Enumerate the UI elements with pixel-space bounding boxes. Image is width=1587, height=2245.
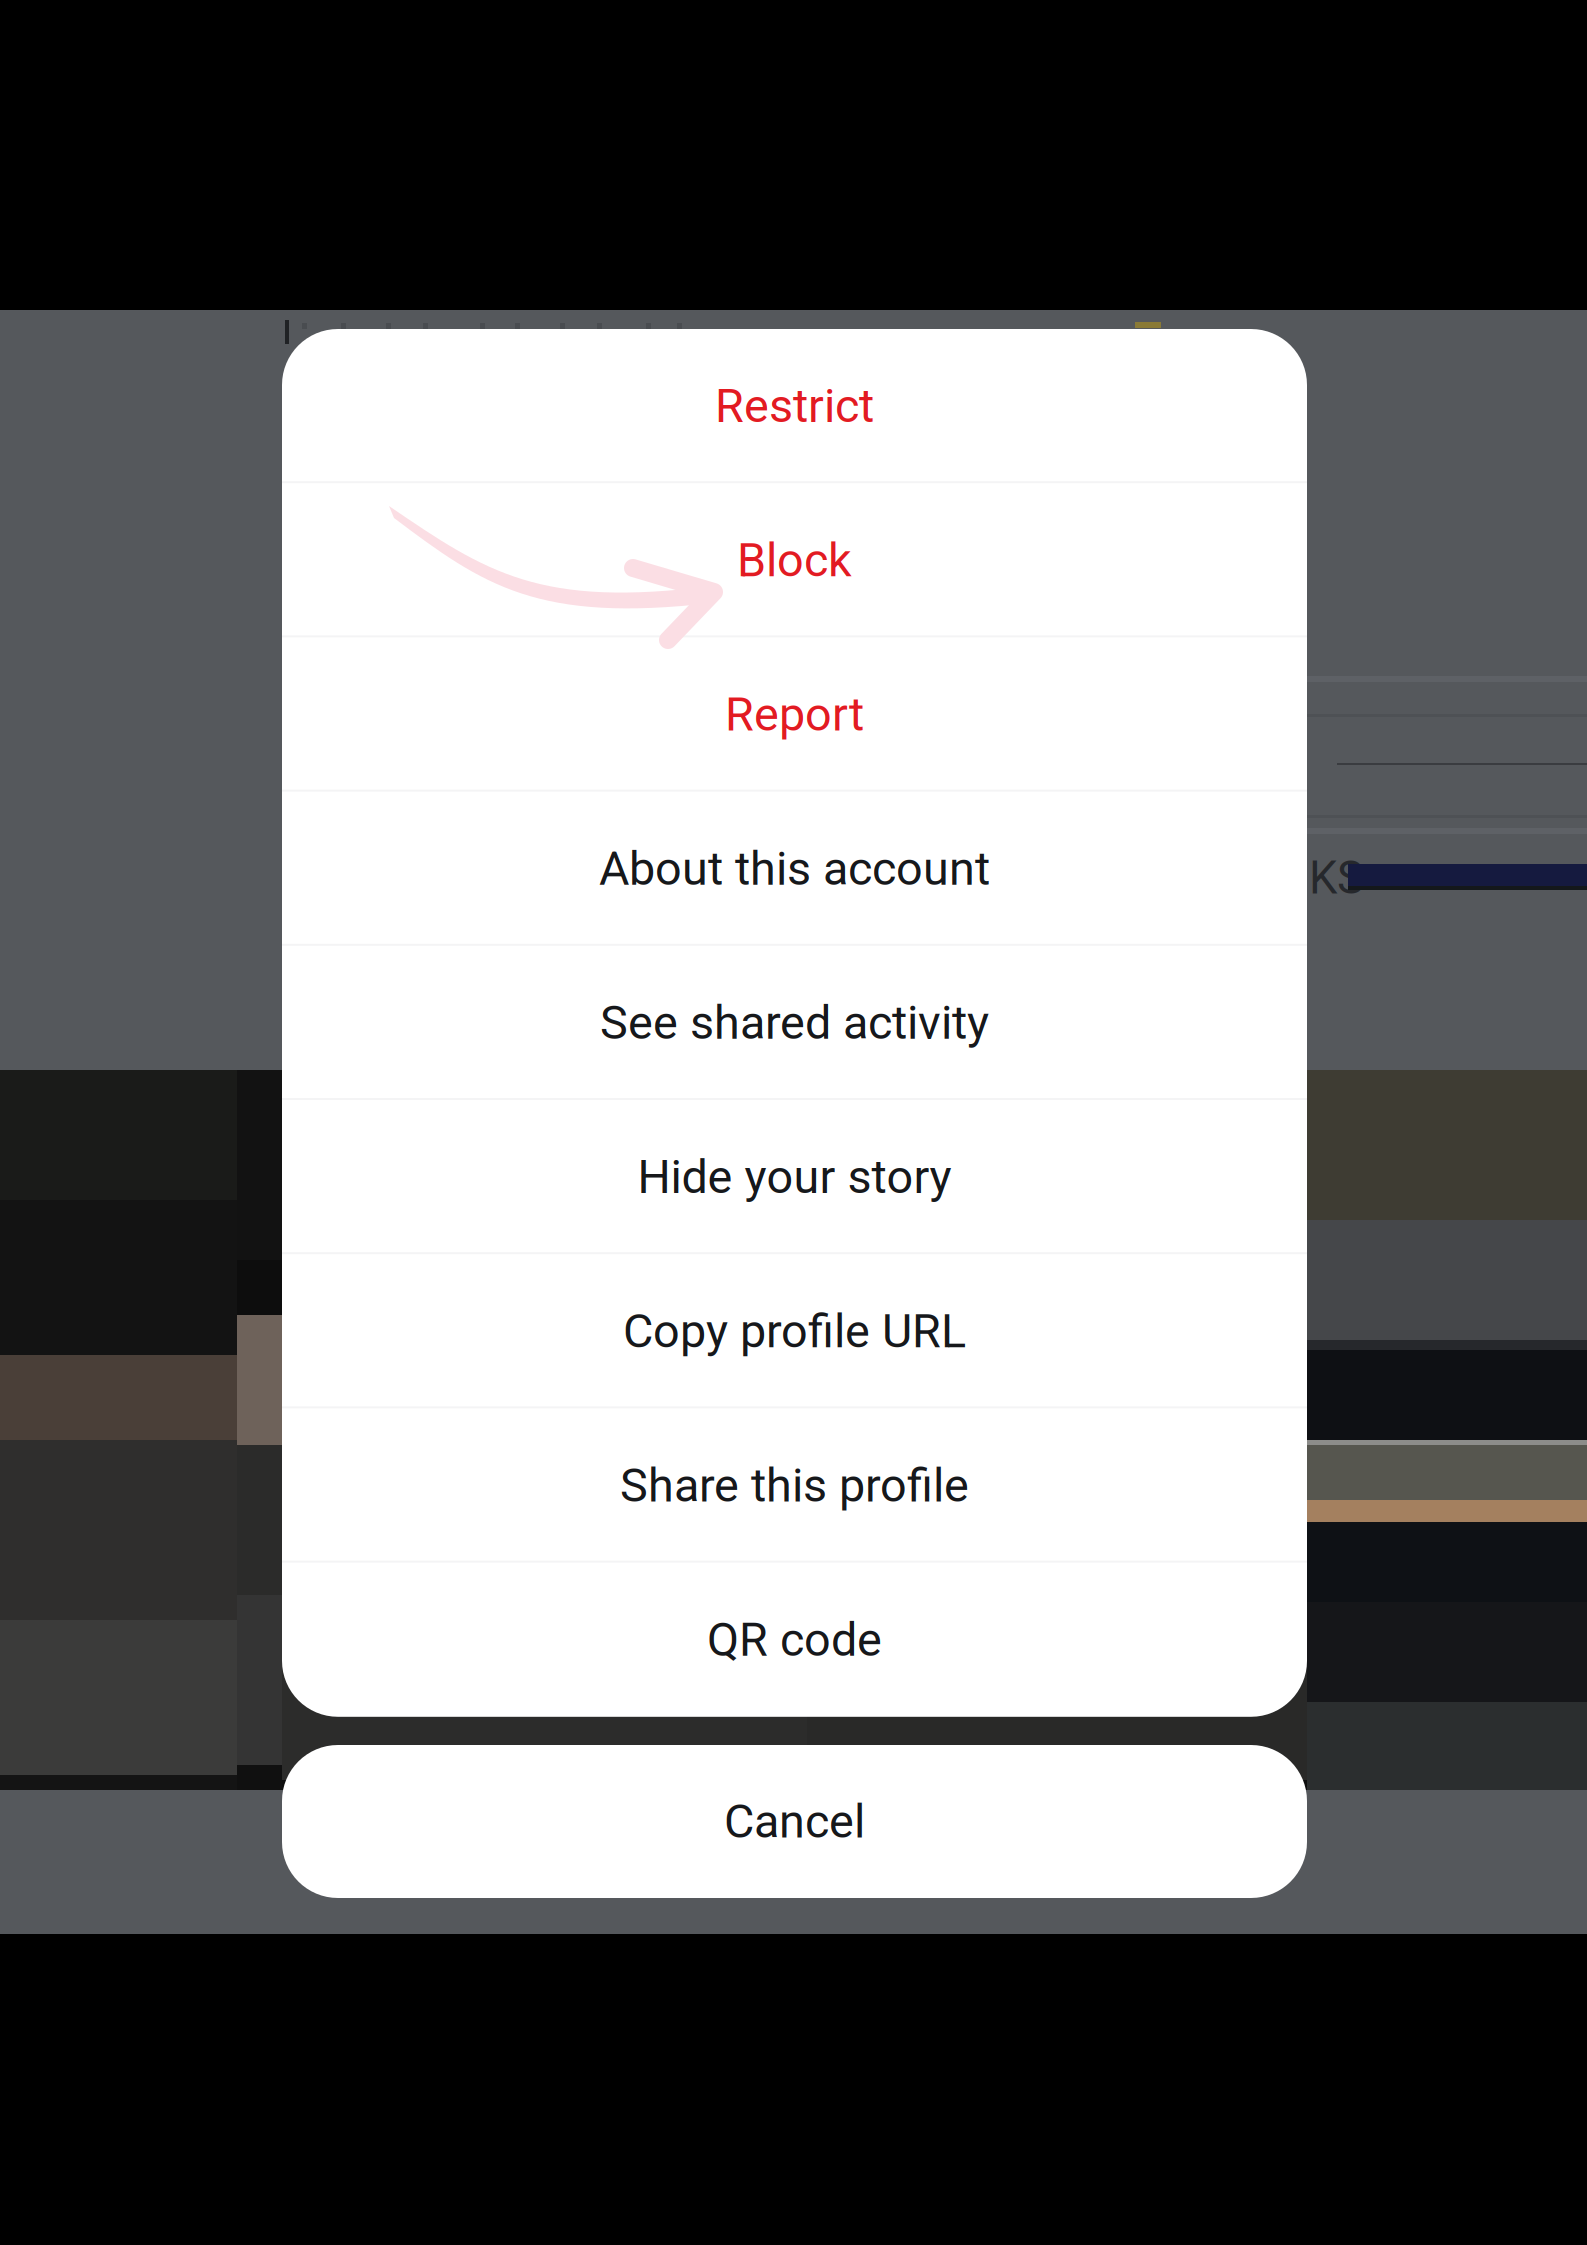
staticText: Restrict xyxy=(715,379,874,433)
button[interactable]: Block xyxy=(282,483,1307,637)
staticText: Hide your story xyxy=(637,1150,951,1204)
staticText: OKS xyxy=(1278,851,1364,904)
button[interactable]: See shared activity xyxy=(282,946,1307,1100)
button[interactable]: Share this profile xyxy=(282,1408,1307,1563)
button[interactable]: Restrict xyxy=(282,329,1307,483)
button[interactable]: Cancel xyxy=(282,1745,1307,1898)
staticText: Copy profile URL xyxy=(623,1304,966,1359)
button[interactable]: Report xyxy=(282,637,1307,792)
button[interactable]: Hide your story xyxy=(282,1100,1307,1254)
staticText: Block xyxy=(737,533,852,588)
staticText: Cancel xyxy=(724,1794,865,1849)
button[interactable]: QR code xyxy=(282,1563,1307,1717)
staticText: See shared activity xyxy=(600,996,989,1050)
staticText: About this account xyxy=(599,841,990,896)
button[interactable]: Dismiss xyxy=(0,310,1587,1934)
staticText: Share this profile xyxy=(620,1458,969,1513)
button[interactable]: About this account xyxy=(282,792,1307,946)
button[interactable]: Copy profile URL xyxy=(282,1254,1307,1408)
staticText: QR code xyxy=(707,1612,882,1667)
staticText: Report xyxy=(725,687,864,742)
